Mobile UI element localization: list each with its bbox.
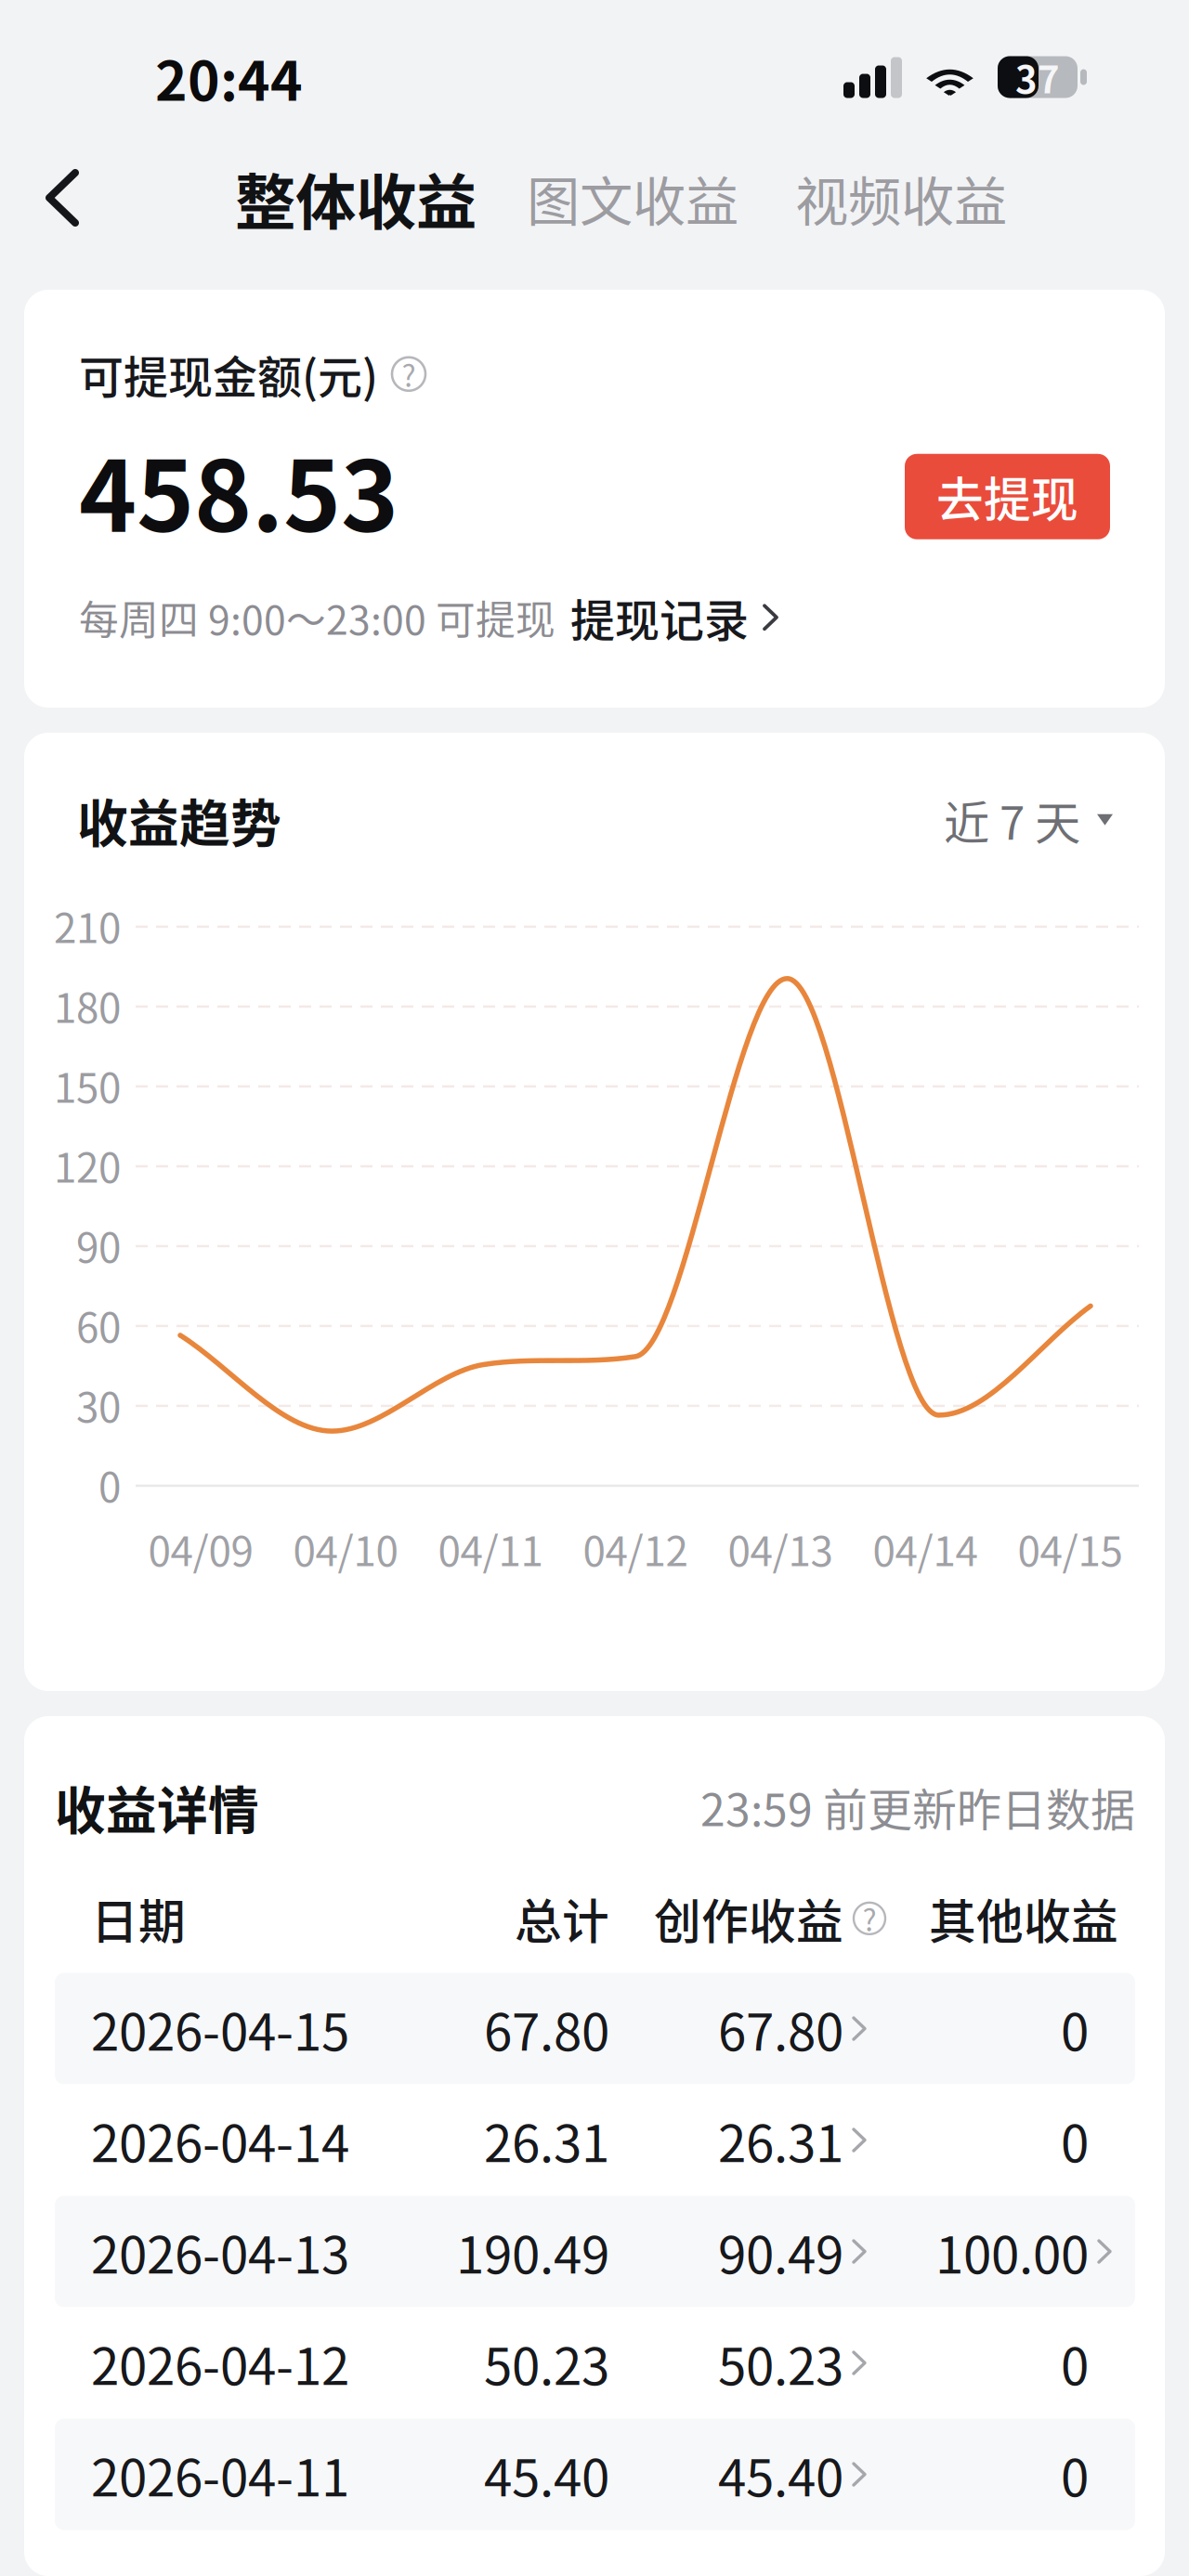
staticText: 每周四 9:00～23:00 可提现 bbox=[79, 589, 555, 646]
button[interactable]: 提现记录 bbox=[555, 578, 777, 657]
staticText: 收益趋势 bbox=[77, 783, 281, 856]
staticText: 可提现金额(元) bbox=[79, 342, 378, 406]
staticText: 67.80 bbox=[484, 1992, 609, 2065]
button[interactable]: 2026-04-11 bbox=[55, 2419, 1135, 2530]
staticText: 458.53 bbox=[79, 418, 399, 560]
staticText: 图文收益 bbox=[527, 159, 738, 236]
staticText: 0 bbox=[1061, 2438, 1089, 2511]
staticText: ? bbox=[862, 1897, 876, 1940]
staticText: 04/15 bbox=[1018, 1519, 1123, 1578]
staticText: 45.40 bbox=[484, 2438, 609, 2511]
staticText: 50.23 bbox=[718, 2326, 843, 2400]
staticText: 2026-04-15 bbox=[91, 1992, 349, 2065]
staticText: 总计 bbox=[515, 1884, 609, 1953]
button[interactable]: 创作收益说明 bbox=[843, 1901, 887, 1936]
staticText: 04/12 bbox=[583, 1519, 688, 1578]
staticText: 0 bbox=[1061, 2326, 1089, 2400]
button[interactable]: 2026-04-13 bbox=[55, 2196, 1135, 2307]
button[interactable]: 返回 bbox=[0, 106, 176, 290]
staticText: 2026-04-12 bbox=[91, 2326, 349, 2400]
staticText: 0 bbox=[1061, 1992, 1089, 2065]
staticText: 180 bbox=[54, 976, 121, 1035]
staticText: 60 bbox=[76, 1295, 121, 1354]
staticText: 2026-04-11 bbox=[91, 2438, 349, 2511]
button[interactable]: 2026-04-15 bbox=[55, 1973, 1135, 2084]
staticText: 2026-04-13 bbox=[91, 2215, 349, 2288]
staticText: 04/13 bbox=[728, 1519, 833, 1578]
staticText: 0 bbox=[1061, 2103, 1089, 2177]
staticText: 30 bbox=[76, 1375, 121, 1434]
button[interactable]: 2026-04-14 bbox=[55, 2084, 1135, 2196]
staticText: 收益详情 bbox=[55, 1770, 259, 1844]
staticText: 近 7 天 bbox=[944, 787, 1080, 853]
staticText: 90.49 bbox=[718, 2215, 843, 2288]
staticText: 2026-04-14 bbox=[91, 2103, 349, 2177]
staticText: 190.49 bbox=[456, 2215, 609, 2288]
staticText: 37 bbox=[1015, 50, 1060, 104]
staticText: 90 bbox=[76, 1215, 121, 1274]
staticText: 提现记录 bbox=[570, 585, 749, 650]
staticText: 去提现 bbox=[936, 463, 1078, 531]
button[interactable]: 2026-04-12 bbox=[55, 2307, 1135, 2419]
staticText: 创作收益 bbox=[654, 1884, 843, 1953]
staticText: 210 bbox=[54, 896, 121, 955]
staticText: 视频收益 bbox=[795, 159, 1007, 236]
staticText: 日期 bbox=[91, 1884, 186, 1953]
button[interactable]: 去提现 bbox=[905, 454, 1110, 539]
staticText: 150 bbox=[54, 1055, 121, 1115]
button[interactable]: 近 7 天 bbox=[944, 779, 1113, 860]
staticText: 50.23 bbox=[484, 2326, 609, 2400]
staticText: 04/09 bbox=[148, 1519, 253, 1578]
button[interactable]: 整体收益 bbox=[176, 106, 498, 290]
staticText: 其他收益 bbox=[929, 1884, 1118, 1953]
staticText: 45.40 bbox=[718, 2438, 843, 2511]
button[interactable]: 帮助 bbox=[390, 355, 427, 393]
button[interactable]: 图文收益 bbox=[498, 106, 769, 290]
staticText: 120 bbox=[54, 1135, 121, 1194]
staticText: 26.31 bbox=[718, 2103, 843, 2177]
staticText: 0 bbox=[98, 1455, 121, 1514]
staticText: 26.31 bbox=[484, 2103, 609, 2177]
staticText: ? bbox=[402, 353, 416, 396]
staticText: 67.80 bbox=[718, 1992, 843, 2065]
staticText: 整体收益 bbox=[235, 154, 477, 242]
staticText: 04/11 bbox=[438, 1519, 543, 1578]
staticText: 23:59 前更新昨日数据 bbox=[700, 1774, 1135, 1839]
staticText: 04/14 bbox=[873, 1519, 978, 1578]
button[interactable]: 视频收益 bbox=[769, 106, 1033, 290]
staticText: 100.00 bbox=[935, 2215, 1089, 2288]
staticText: 04/10 bbox=[293, 1519, 398, 1578]
staticText: 20:44 bbox=[155, 38, 303, 117]
